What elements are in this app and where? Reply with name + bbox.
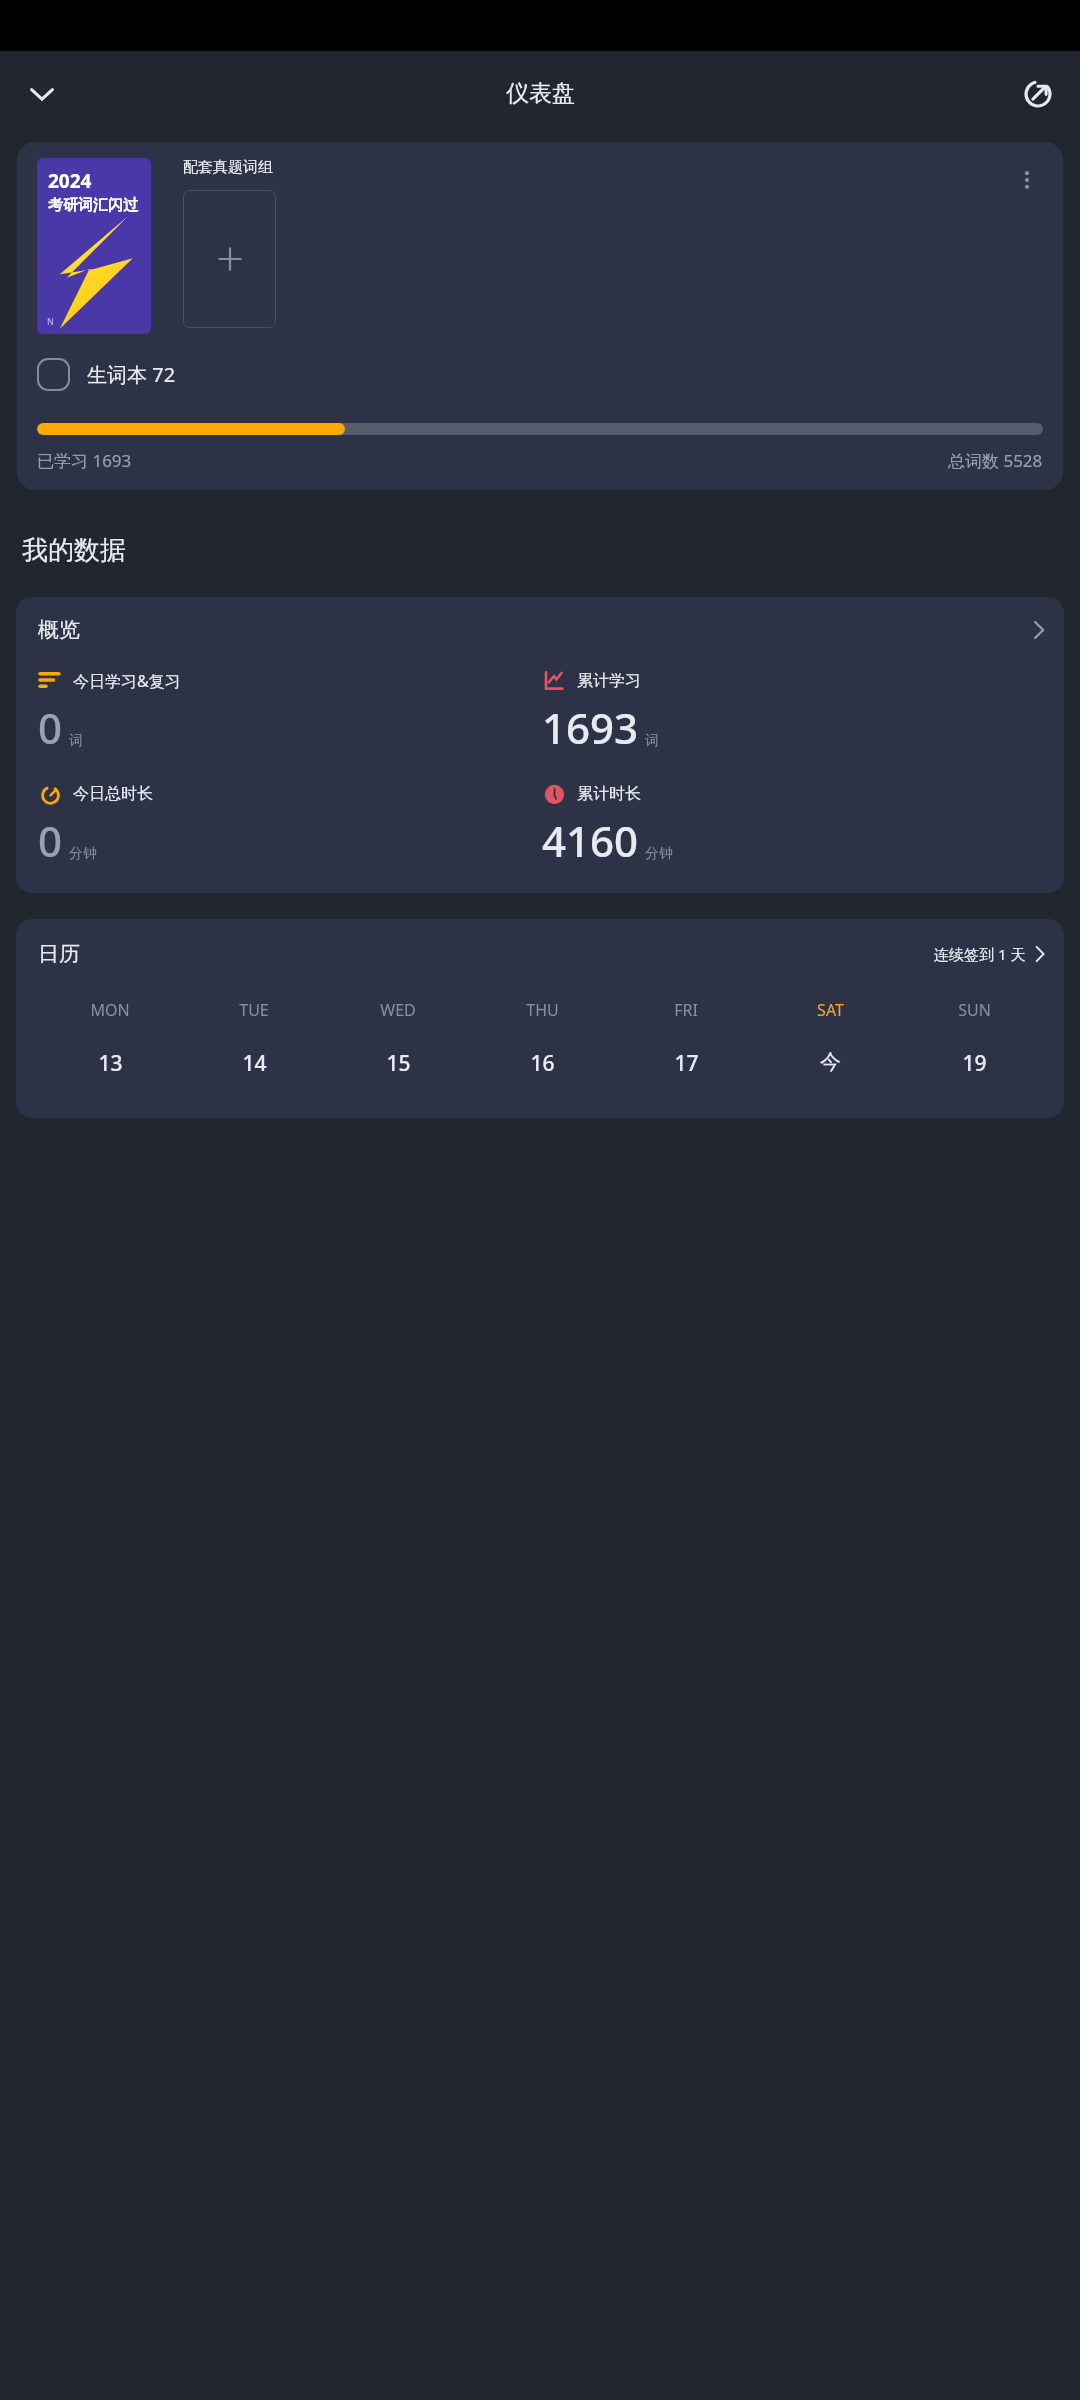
- staticText: 15: [386, 1049, 411, 1078]
- button[interactable]: 2024: [37, 158, 151, 334]
- staticText: SAT: [817, 999, 844, 1021]
- button[interactable]: 今: [758, 1049, 902, 1075]
- staticText: 今: [820, 1049, 841, 1075]
- staticText: 词: [69, 732, 83, 750]
- staticText: SUN: [958, 999, 991, 1021]
- staticText: 4160: [542, 812, 639, 869]
- staticText: 日历: [38, 941, 80, 967]
- button[interactable]: 概览: [16, 597, 1064, 893]
- staticText: 今日总时长: [73, 784, 153, 804]
- staticText: 14: [242, 1049, 267, 1078]
- staticText: 概览: [38, 617, 80, 643]
- staticText: WED: [380, 999, 416, 1021]
- button[interactable]: 13: [38, 1049, 182, 1078]
- staticText: N: [47, 315, 54, 327]
- staticText: 词: [645, 732, 659, 750]
- button[interactable]: 19: [902, 1049, 1046, 1078]
- button[interactable]: 日历: [16, 919, 1064, 1118]
- staticText: 16: [530, 1049, 555, 1078]
- staticText: 总词数 5528: [948, 449, 1043, 472]
- staticText: 生词本 72: [87, 361, 176, 388]
- staticText: 0: [38, 699, 63, 756]
- staticText: 配套真题词组: [183, 158, 273, 177]
- button[interactable]: More options: [1005, 158, 1049, 202]
- staticText: 累计学习: [577, 671, 641, 691]
- staticText: 13: [98, 1049, 123, 1078]
- staticText: 17: [674, 1049, 699, 1078]
- button[interactable]: 生词本 72: [37, 356, 176, 393]
- staticText: 我的数据: [22, 534, 126, 567]
- staticText: 考研词汇闪过: [48, 196, 138, 215]
- staticText: FRI: [674, 999, 698, 1021]
- button[interactable]: 2024: [17, 142, 1063, 490]
- staticText: 分钟: [645, 845, 673, 863]
- button[interactable]: 17: [614, 1049, 758, 1078]
- staticText: TUE: [239, 999, 269, 1021]
- staticText: 分钟: [69, 845, 97, 863]
- staticText: 累计时长: [577, 784, 641, 804]
- staticText: MON: [90, 999, 130, 1021]
- staticText: 1693: [542, 699, 639, 756]
- button[interactable]: 14: [182, 1049, 326, 1078]
- staticText: 2024: [48, 168, 92, 194]
- staticText: 已学习 1693: [37, 449, 132, 472]
- button[interactable]: Add book: [183, 190, 276, 328]
- staticText: 连续签到 1 天: [934, 944, 1026, 964]
- button[interactable]: Share: [1010, 66, 1066, 122]
- button[interactable]: 16: [470, 1049, 614, 1078]
- staticText: 今日学习&复习: [73, 670, 181, 692]
- button[interactable]: 15: [326, 1049, 470, 1078]
- button[interactable]: Collapse: [14, 66, 70, 122]
- staticText: 仪表盘: [506, 79, 575, 108]
- staticText: THU: [526, 999, 559, 1021]
- staticText: 19: [962, 1049, 987, 1078]
- staticText: 0: [38, 812, 63, 869]
